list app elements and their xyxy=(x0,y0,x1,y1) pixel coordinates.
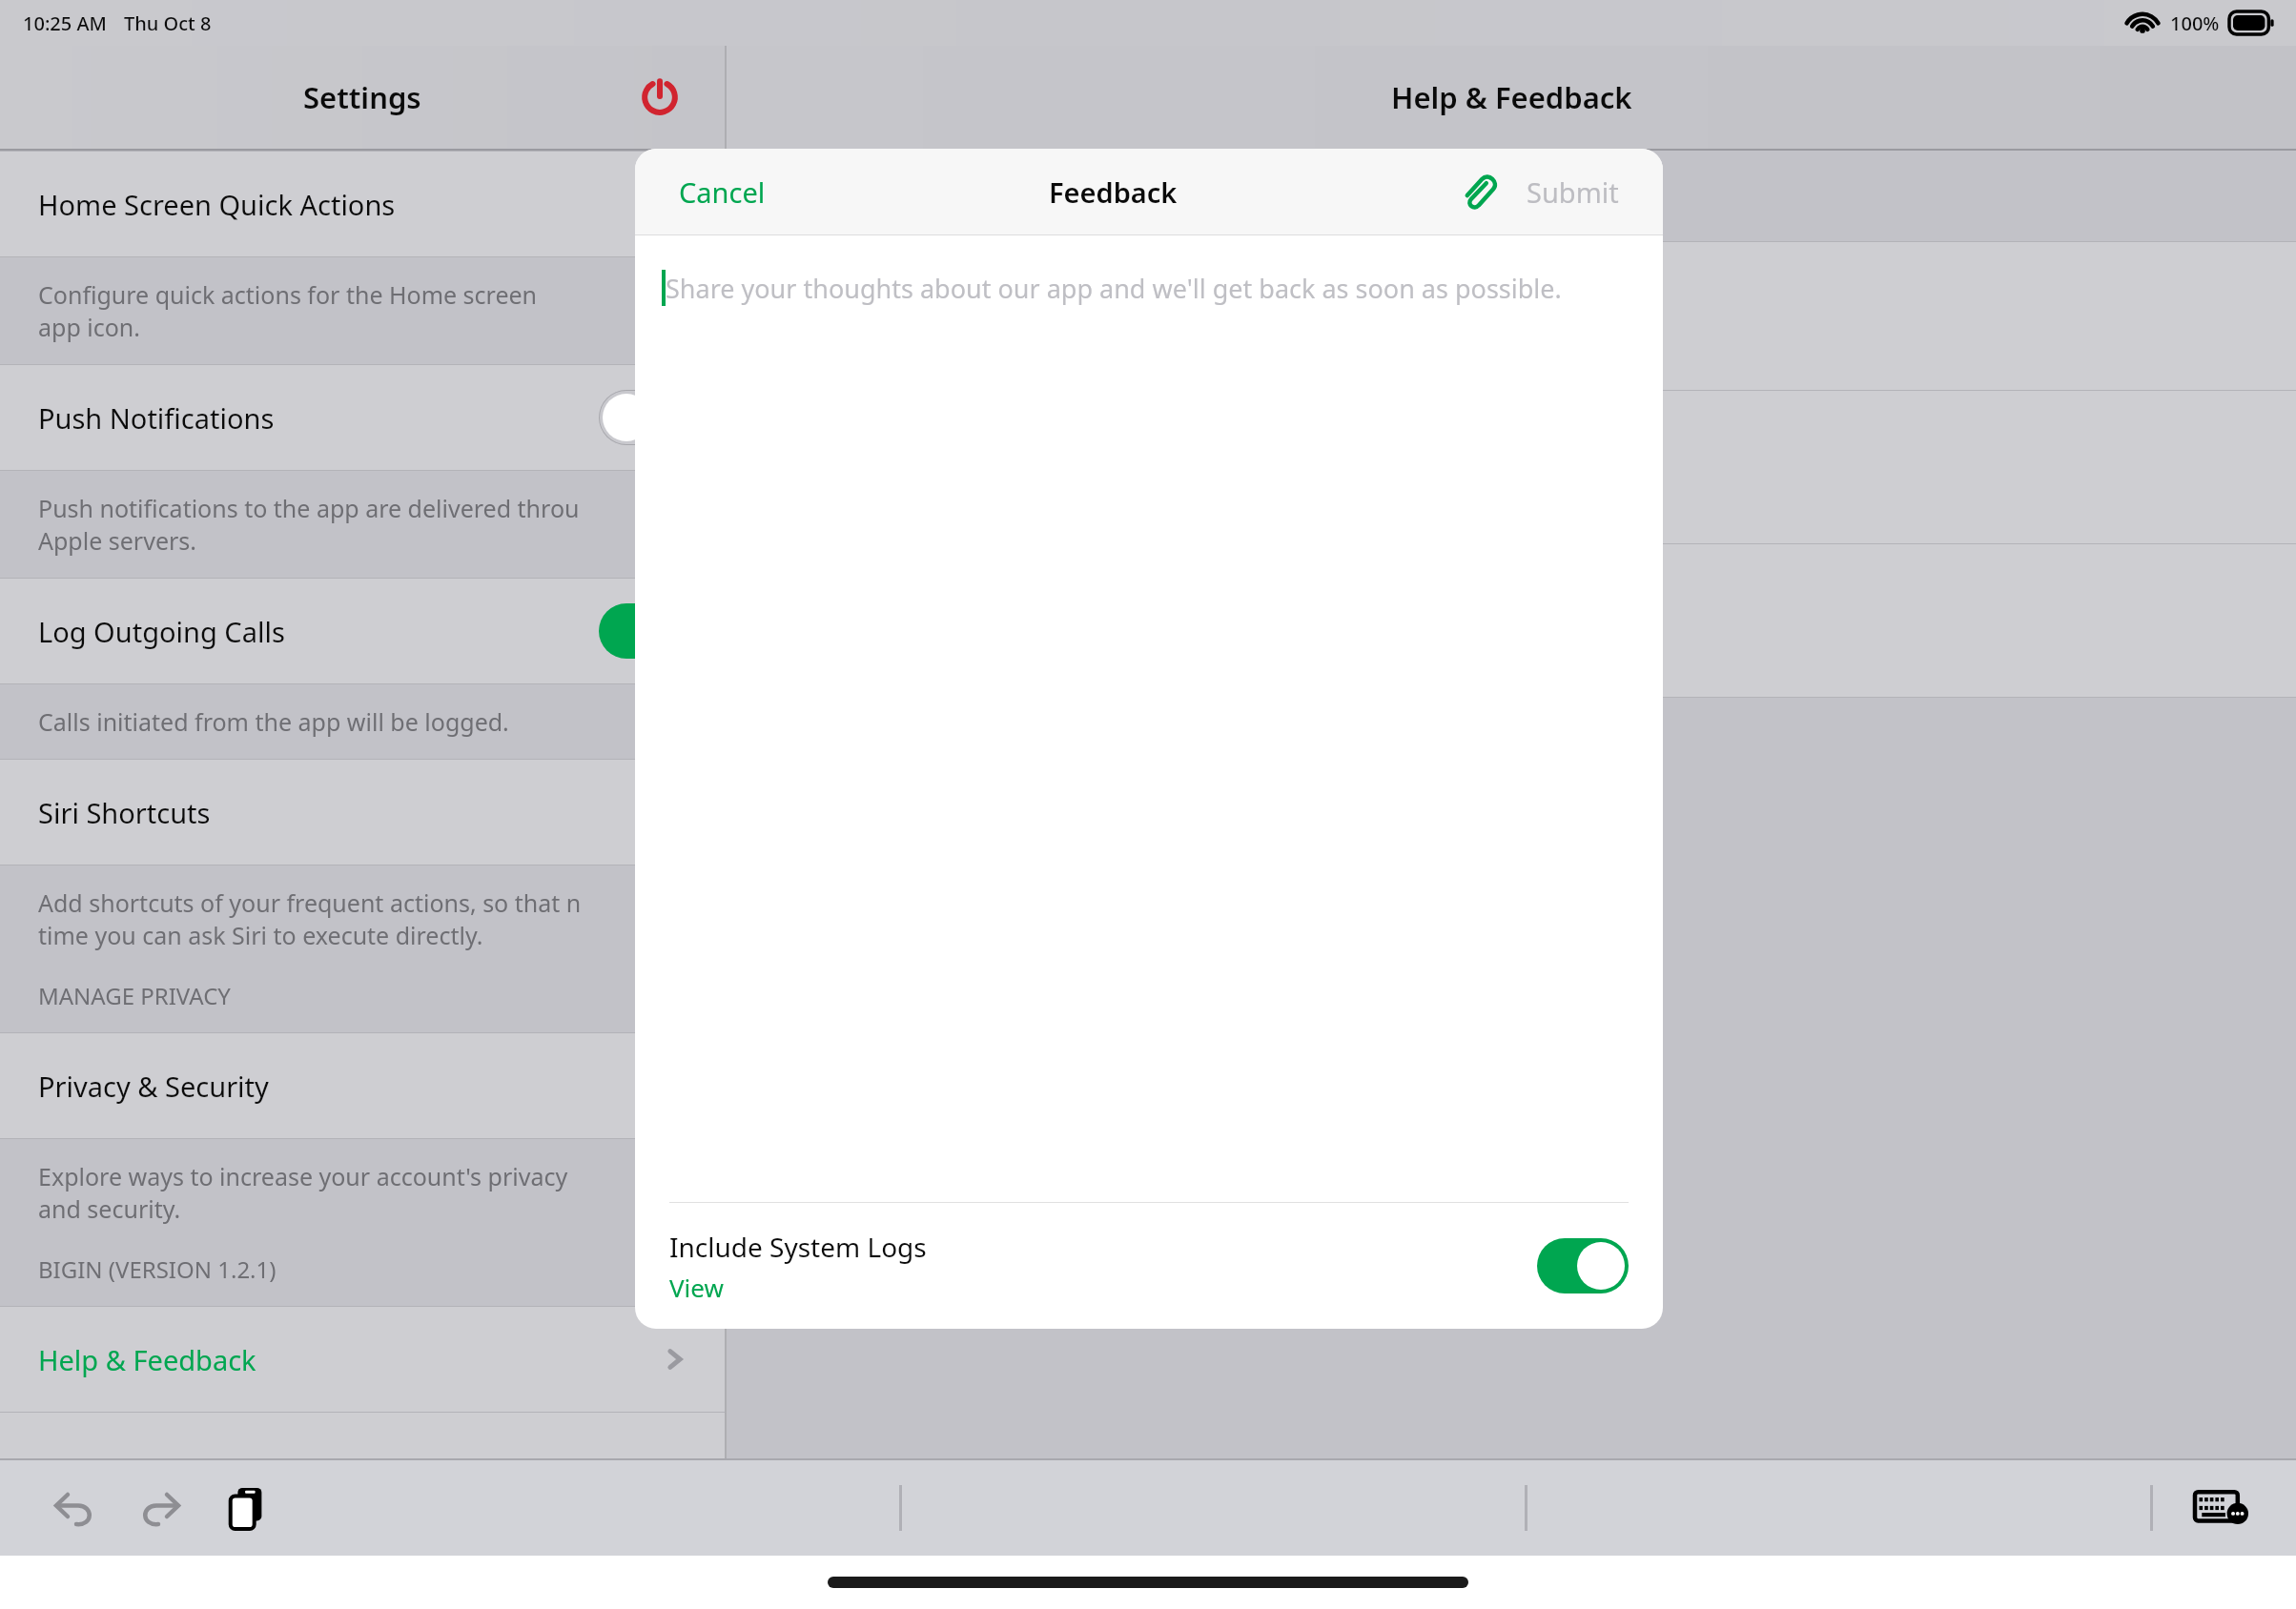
button[interactable]: On xyxy=(599,603,690,659)
staticText: MANAGE PRIVACY xyxy=(38,980,231,1011)
button[interactable]: Sign out xyxy=(633,71,687,124)
staticText: Feedback xyxy=(1049,173,1178,211)
staticText: Share your thoughts about our app and we… xyxy=(666,271,1562,306)
staticText: and security. xyxy=(38,1192,181,1225)
button[interactable]: Undo xyxy=(44,1478,103,1538)
staticText: Privacy & Security xyxy=(38,1068,269,1105)
button[interactable]: Home Screen Quick Actions xyxy=(0,152,725,256)
staticText: Help & Feedback xyxy=(1391,77,1632,117)
button[interactable]: Off xyxy=(599,390,690,445)
button[interactable]: Help & Feedback xyxy=(0,1307,725,1412)
staticText: Push Notifications xyxy=(38,399,275,437)
staticText: Siri Shortcuts xyxy=(38,794,211,831)
button[interactable]: Keyboard options xyxy=(2191,1477,2252,1538)
staticText: Push notifications to the app are delive… xyxy=(38,492,580,524)
staticText: Settings xyxy=(303,77,421,117)
staticText: app icon. xyxy=(38,311,141,343)
button[interactable]: Privacy & Security xyxy=(0,1033,725,1138)
button[interactable]: Siri Shortcuts xyxy=(0,760,725,865)
staticText: Submit xyxy=(1527,173,1619,211)
staticText: Thu Oct 8 xyxy=(124,10,212,36)
staticText: BIGIN (VERSION 1.2.1) xyxy=(38,1253,277,1285)
staticText: 100% xyxy=(2170,10,2220,36)
button[interactable]: Share your thoughts about our app and we… xyxy=(635,235,1663,1202)
button[interactable]: On xyxy=(1537,1238,1629,1293)
staticText: Add shortcuts of your frequent actions, … xyxy=(38,886,582,919)
staticText: Log Outgoing Calls xyxy=(38,613,285,650)
staticText: Help & Feedback xyxy=(38,1341,256,1378)
button[interactable]: Attach file xyxy=(1456,170,1500,214)
button[interactable]: Include System Logs xyxy=(635,1203,1663,1329)
staticText: Configure quick actions for the Home scr… xyxy=(38,278,538,311)
staticText: Explore ways to increase your account's … xyxy=(38,1160,568,1192)
button[interactable]: Paste xyxy=(217,1478,277,1538)
button[interactable]: Cancel xyxy=(673,168,771,216)
staticText: time you can ask Siri to execute directl… xyxy=(38,919,483,951)
staticText: Home Screen Quick Actions xyxy=(38,186,396,223)
staticText: 10:25 AM xyxy=(23,10,107,36)
staticText: Apple servers. xyxy=(38,524,196,557)
button[interactable]: Log Outgoing Calls xyxy=(0,579,725,683)
button[interactable]: View xyxy=(669,1271,724,1304)
staticText: Cancel xyxy=(679,173,766,211)
button[interactable] xyxy=(727,242,2296,390)
button[interactable]: Push Notifications xyxy=(0,365,725,470)
button[interactable]: Redo xyxy=(132,1478,191,1538)
button[interactable]: Submit xyxy=(1521,168,1625,216)
button[interactable] xyxy=(727,391,2296,543)
staticText: Calls initiated from the app will be log… xyxy=(38,705,509,738)
button[interactable] xyxy=(727,544,2296,697)
staticText: Include System Logs xyxy=(669,1229,927,1265)
